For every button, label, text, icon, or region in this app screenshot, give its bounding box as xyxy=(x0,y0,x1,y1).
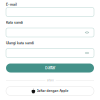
staticText: E-mail xyxy=(6,3,17,7)
staticText: Daftar dengan Apple xyxy=(36,89,68,93)
staticText: Kata sandi xyxy=(6,21,23,25)
button[interactable]: Kata sandi xyxy=(6,28,94,37)
button[interactable]: Daftar xyxy=(6,63,94,72)
button[interactable]: Ulangi kata sandi xyxy=(6,48,94,57)
staticText: Daftar xyxy=(45,66,55,70)
staticText: atau xyxy=(47,78,54,82)
staticText: Ulangi kata sandi xyxy=(6,41,34,45)
button[interactable]: Daftar dengan Apple xyxy=(6,86,94,95)
button[interactable]: E-mail xyxy=(6,7,94,16)
